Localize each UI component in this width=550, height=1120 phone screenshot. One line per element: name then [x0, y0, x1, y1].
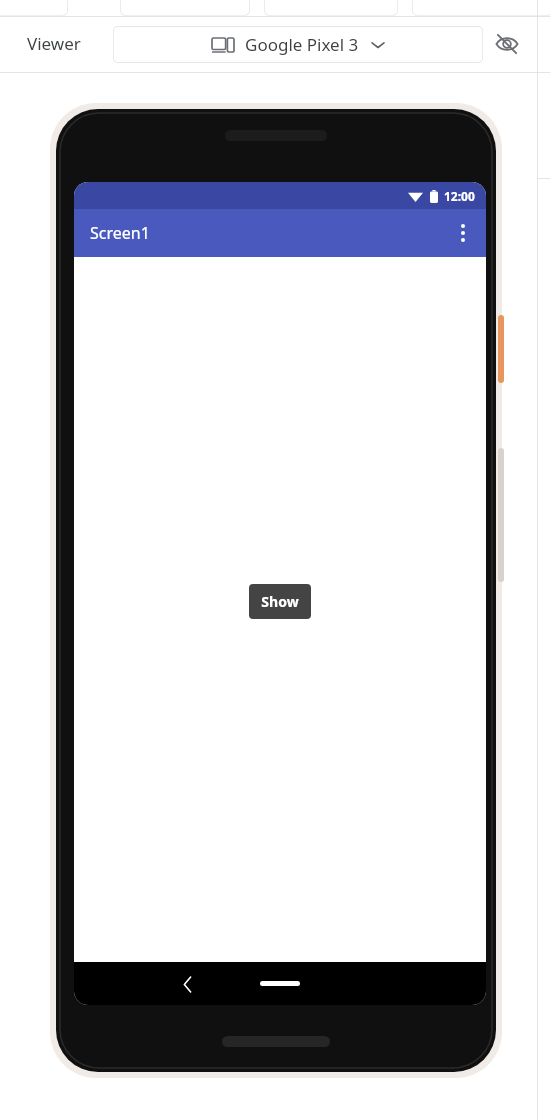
button[interactable]: [264, 0, 398, 16]
button[interactable]: Google Pixel 3: [113, 26, 483, 63]
staticText: 12:00: [444, 188, 475, 204]
button[interactable]: Hide preview: [492, 29, 522, 59]
button[interactable]: [412, 0, 550, 16]
button[interactable]: Back: [170, 967, 204, 1001]
button[interactable]: [0, 0, 68, 16]
button[interactable]: More options: [446, 216, 480, 250]
button[interactable]: Home: [260, 981, 300, 986]
button[interactable]: Show: [249, 584, 311, 619]
staticText: Google Pixel 3: [245, 33, 359, 56]
button[interactable]: [120, 0, 250, 16]
staticText: Screen1: [90, 222, 150, 244]
staticText: Show: [261, 592, 299, 611]
staticText: Viewer: [27, 32, 81, 55]
